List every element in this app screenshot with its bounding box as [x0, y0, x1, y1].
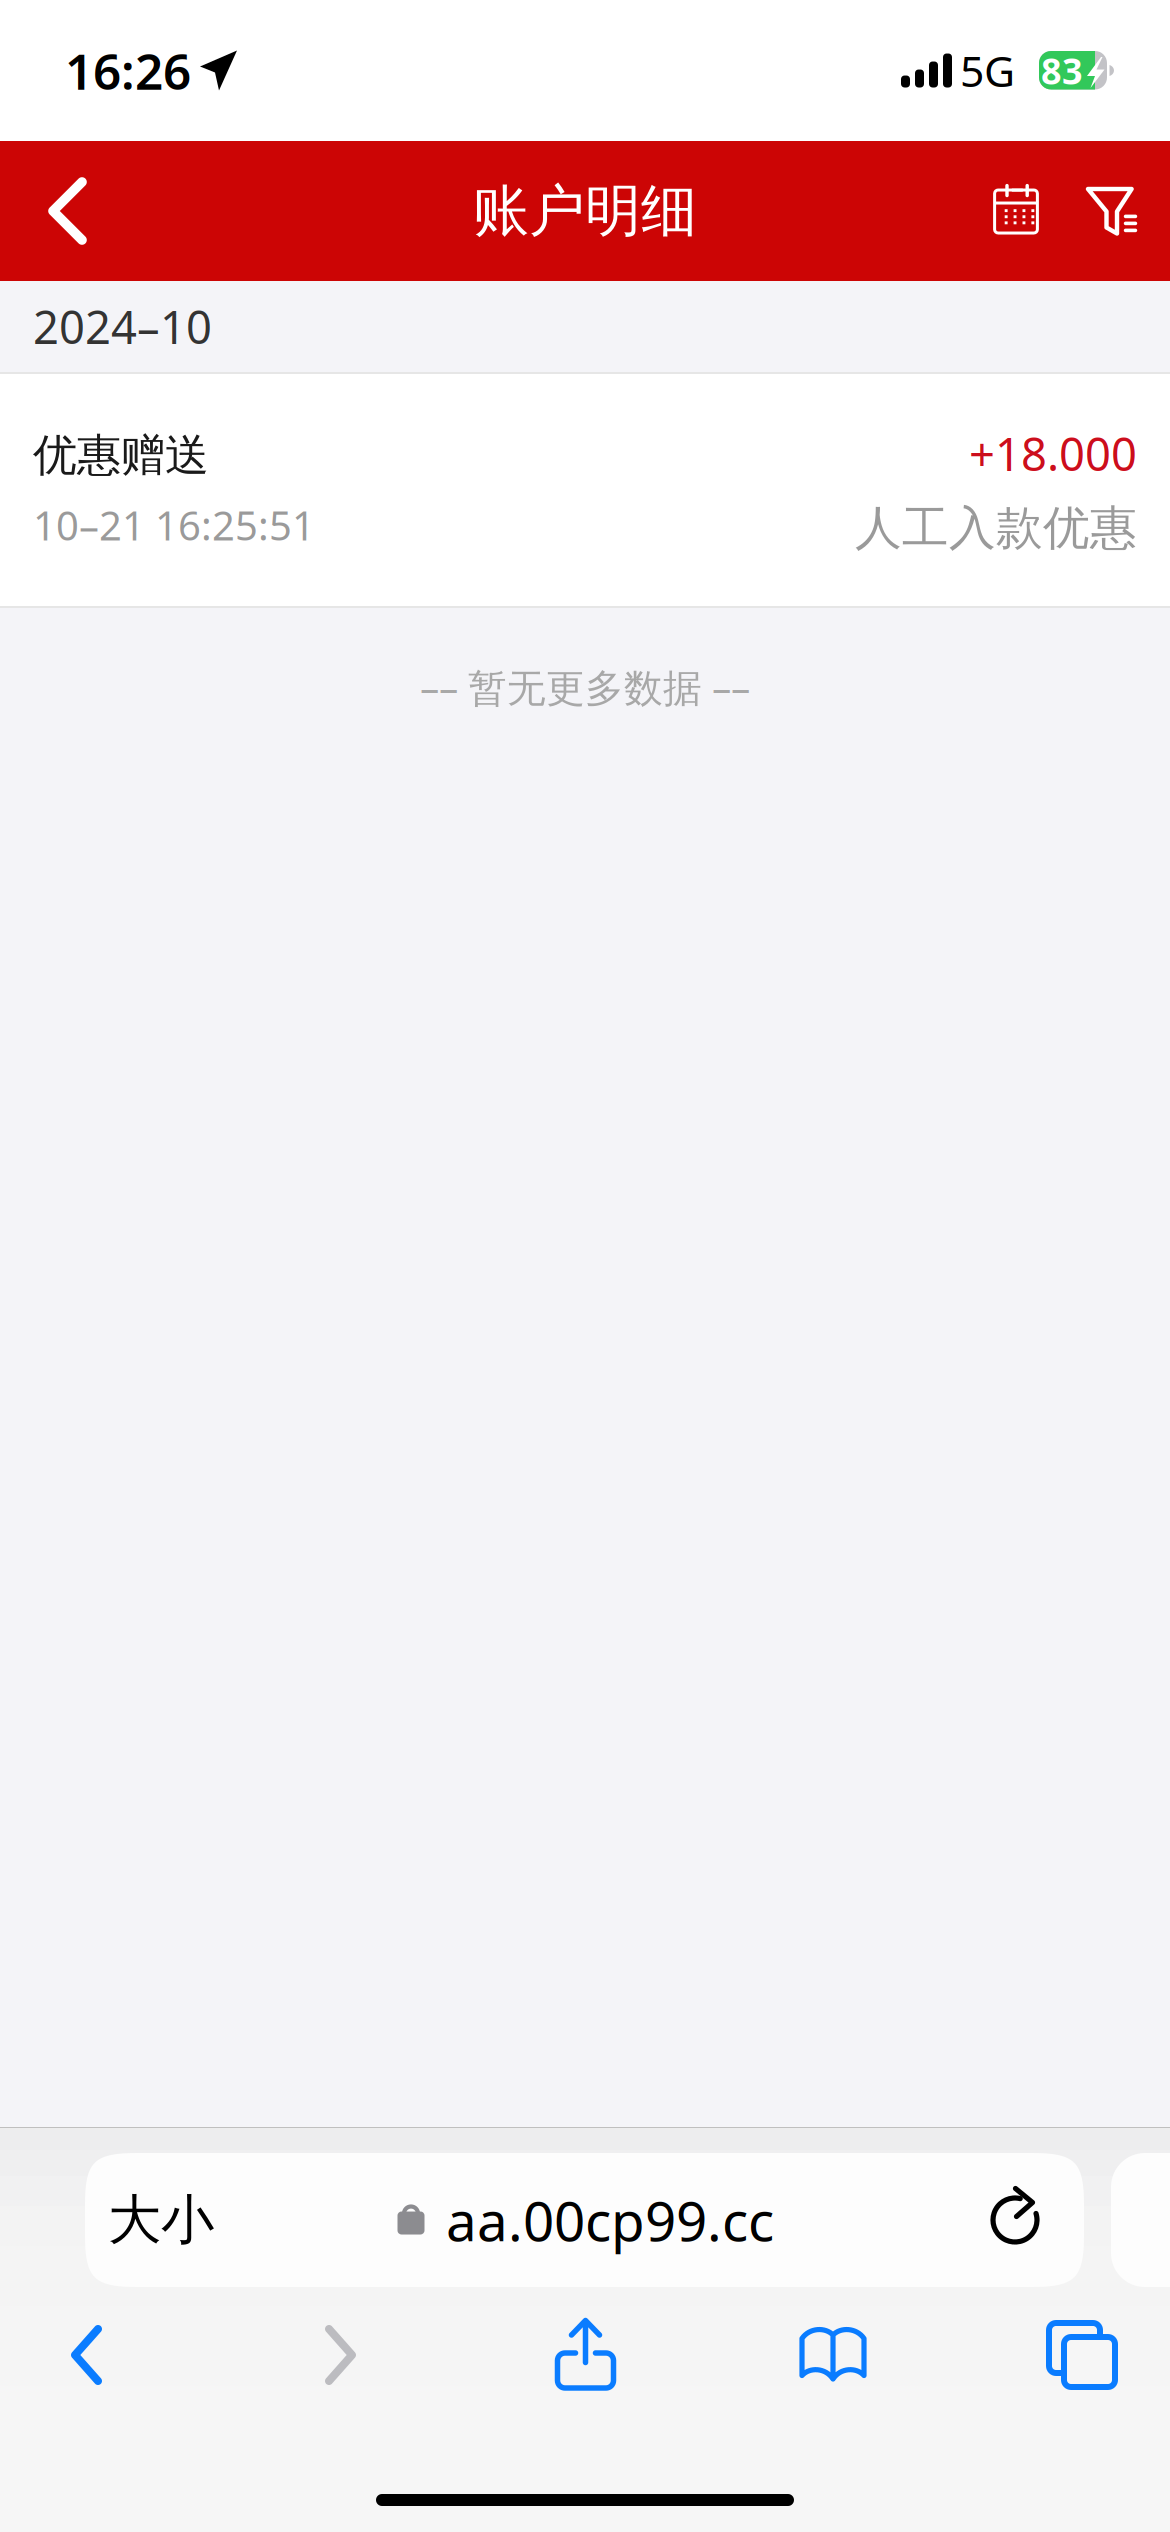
button[interactable]: Bookmarks	[758, 2303, 908, 2407]
staticText: 83	[1041, 47, 1083, 94]
staticText: 5G	[960, 42, 1015, 99]
staticText: 优惠赠送	[33, 428, 209, 482]
staticText: 2024–10	[33, 296, 212, 357]
staticText: aa.00cp99.cc	[446, 2184, 774, 2256]
staticText: +18.000	[969, 423, 1137, 483]
button[interactable]: Share	[516, 2303, 656, 2407]
button[interactable]: Forward	[270, 2303, 410, 2407]
staticText: 大小	[108, 2187, 214, 2253]
button[interactable]: Filter	[1063, 141, 1159, 281]
staticText: 10–21 16:25:51	[33, 498, 315, 552]
button[interactable]: Page settings	[85, 2153, 237, 2287]
staticText: 人工入款优惠	[855, 499, 1137, 557]
button[interactable]: Select date	[969, 141, 1063, 281]
button[interactable]: Reload page	[956, 2153, 1084, 2287]
button[interactable]: Tabs	[1006, 2303, 1156, 2407]
button[interactable]: Back	[10, 141, 125, 281]
staticText: 账户明细	[473, 177, 697, 245]
button[interactable]: Back	[0, 2303, 174, 2407]
button[interactable]: 优惠赠送	[0, 374, 1170, 606]
staticText: 16:26	[65, 38, 191, 103]
staticText: –– 暂无更多数据 ––	[420, 661, 750, 713]
